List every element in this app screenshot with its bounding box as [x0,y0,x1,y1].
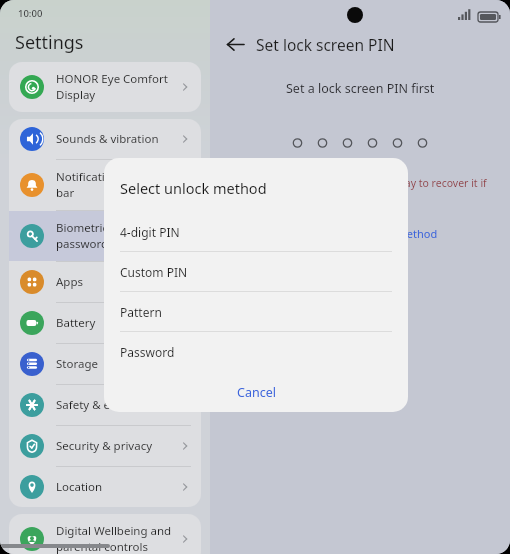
staticText: Biometrics & [56,220,125,236]
button[interactable]: Security & privacy [9,426,201,466]
button[interactable]: Safety & emergency [9,385,201,425]
staticText: Battery [56,315,96,331]
button[interactable]: Notifications & status [9,160,201,210]
staticText: Display [56,87,96,103]
staticText: 10:00 [18,7,43,20]
button[interactable]: Battery [9,303,201,343]
staticText: parental controls [56,539,148,554]
staticText: Location [56,479,103,495]
staticText: Security & privacy [56,438,153,454]
button[interactable]: Digital Wellbeing and [9,514,201,554]
staticText: Set lock screen PIN [256,34,395,55]
staticText: Remember your PIN. There is no way to re… [224,176,496,204]
staticText: Apps [56,274,84,290]
button[interactable]: 4-digit PIN [104,212,408,252]
staticText: Safety & emergency [56,397,165,413]
staticText: Password [120,344,175,360]
staticText: Cancel [237,384,276,401]
button[interactable]: Location [9,467,201,507]
button[interactable]: Password [104,332,408,372]
staticText: HONOR Eye Comfort [56,71,168,87]
staticText: Notifications & status [56,169,172,185]
staticText: Storage [56,356,98,372]
staticText: Settings [15,30,84,55]
staticText: Digital Wellbeing and [56,523,172,539]
button[interactable]: HONOR Eye Comfort [9,62,201,112]
button[interactable]: Select another unlock method [282,226,438,241]
button[interactable]: Storage [9,344,201,384]
staticText: bar [56,185,75,201]
staticText: Set a lock screen PIN first [286,80,435,97]
button[interactable]: Custom PIN [104,252,408,292]
button[interactable]: Back [218,27,252,61]
button[interactable]: Apps [9,262,201,302]
button[interactable]: Cancel [104,376,408,408]
staticText: 4-digit PIN [120,224,180,240]
staticText: Pattern [120,304,162,320]
button[interactable]: Pattern [104,292,408,332]
staticText: Select unlock method [120,178,267,198]
staticText: passwords [56,236,114,252]
staticText: Sounds & vibration [56,131,159,147]
button[interactable]: Biometrics & [9,211,201,261]
staticText: Custom PIN [120,264,188,280]
button[interactable]: Sounds & vibration [9,119,201,159]
